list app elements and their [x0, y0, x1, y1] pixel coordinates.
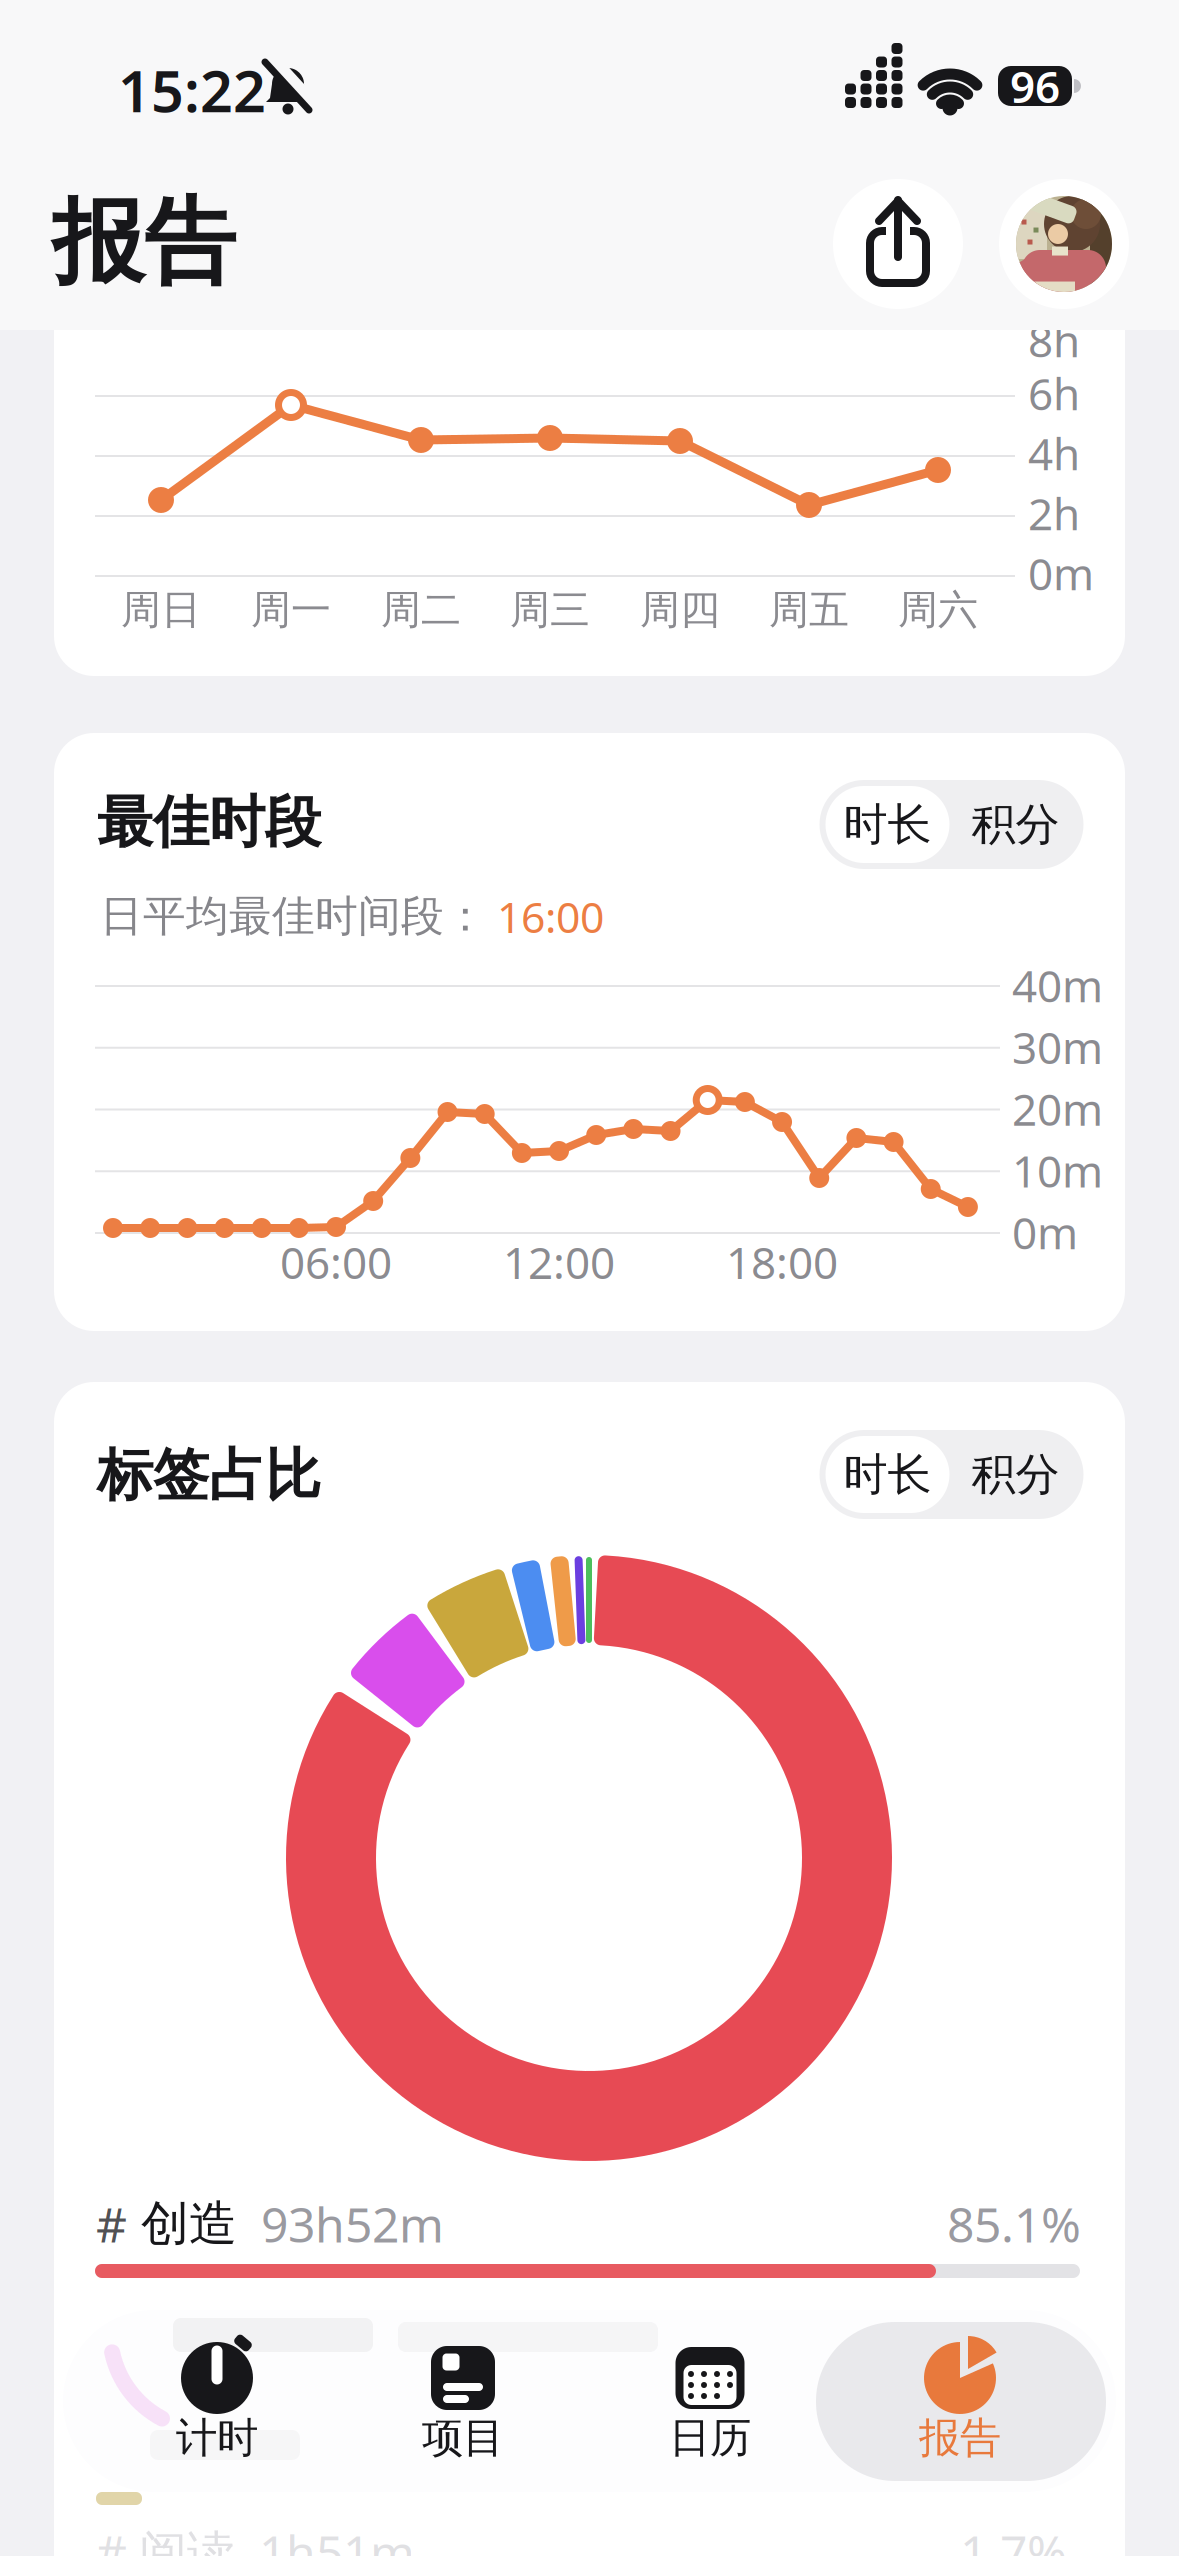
staticText: # [96, 2192, 127, 2256]
staticText: 10m [1012, 1141, 1103, 1200]
staticText: 日平均最佳时间段： [100, 890, 487, 942]
staticText: 4h [1028, 424, 1080, 482]
button[interactable]: 项目 [353, 2305, 573, 2495]
staticText: 8h [1028, 311, 1080, 369]
staticText: 0m [1012, 1203, 1078, 1261]
staticText: 1.7% [960, 2520, 1067, 2556]
staticText: 计时 [176, 2413, 258, 2463]
button[interactable]: 积分 [953, 786, 1077, 863]
button[interactable]: 计时 [107, 2305, 327, 2495]
staticText: 周日 [121, 585, 201, 634]
button[interactable]: 时长 [825, 786, 949, 863]
staticText: # 阅读 1h51m [96, 2520, 415, 2556]
staticText: 项目 [422, 2413, 504, 2463]
staticText: 0m [1028, 544, 1094, 602]
staticText: 12:00 [503, 1233, 615, 1291]
staticText: 标签占比 [97, 1441, 321, 1510]
staticText: 40m [1012, 956, 1103, 1014]
staticText: 20m [1012, 1079, 1103, 1138]
staticText: 周五 [769, 585, 849, 634]
staticText: 2h [1028, 484, 1080, 542]
staticText: 周六 [898, 585, 978, 634]
staticText: 报告 [919, 2413, 1001, 2463]
staticText: 报告 [52, 186, 236, 299]
button[interactable]: Profile [999, 179, 1129, 309]
staticText: 周一 [251, 585, 331, 634]
staticText: 周二 [381, 585, 461, 634]
staticText: 时长 [843, 1447, 931, 1501]
staticText: 周三 [510, 585, 590, 634]
staticText: 15:22 [118, 52, 266, 128]
button[interactable]: Share [833, 179, 963, 309]
staticText: 最佳时段 [97, 788, 321, 857]
staticText: 93h52m [237, 2192, 444, 2256]
staticText: 周四 [640, 585, 720, 634]
staticText: 创造 [127, 2194, 237, 2253]
button[interactable]: 积分 [953, 1436, 1077, 1513]
staticText: 时长 [843, 797, 931, 851]
staticText: 6h [1028, 364, 1080, 422]
button[interactable]: 日历 [600, 2305, 820, 2495]
staticText: 积分 [971, 797, 1059, 851]
staticText: 18:00 [726, 1233, 838, 1291]
button[interactable]: 时长 [825, 1436, 949, 1513]
staticText: 16:00 [497, 888, 604, 945]
staticText: 85.1% [947, 2192, 1081, 2256]
button[interactable]: 报告 [850, 2305, 1070, 2495]
staticText: 积分 [971, 1447, 1059, 1501]
staticText: 30m [1012, 1018, 1103, 1076]
staticText: 06:00 [280, 1233, 392, 1291]
staticText: 日历 [669, 2413, 751, 2463]
staticText: 96 [1010, 57, 1060, 115]
